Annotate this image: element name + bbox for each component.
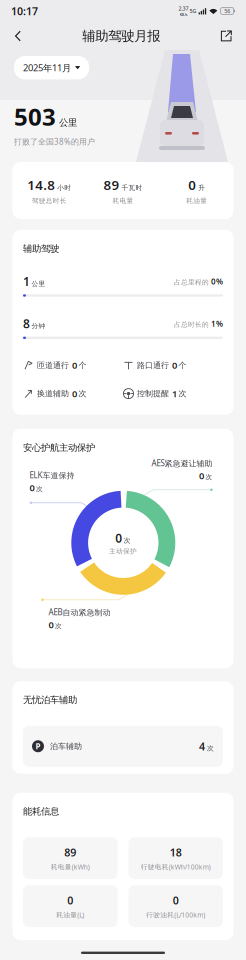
staticText: 公里 (59, 117, 77, 128)
staticText: P (35, 741, 40, 751)
staticText: 1% (211, 318, 223, 329)
staticText: 14.8 (27, 176, 55, 194)
staticText: KB/s (180, 12, 188, 17)
staticText: AES紧急避让辅助 (151, 458, 212, 468)
staticText: 0 (48, 618, 53, 631)
staticText: 行驶油耗(L/100km) (146, 910, 205, 919)
staticText: 0 (72, 387, 77, 400)
staticText: 行驶电耗(kWh/100km) (141, 862, 211, 871)
staticText: 0 (172, 359, 177, 371)
staticText: 泊车辅助 (50, 741, 82, 751)
staticText: 占总时长的 (174, 320, 209, 329)
staticText: 503 (14, 100, 56, 132)
staticText: ELK车道保持 (29, 470, 74, 480)
staticText: 驾驶总时长 (32, 197, 67, 205)
staticText: 匝道通行 (37, 360, 69, 370)
staticText: 0 (115, 530, 122, 546)
staticText: 0 (199, 469, 204, 482)
staticText: 升 (198, 184, 205, 192)
staticText: 占总里程的 (174, 278, 209, 286)
staticText: AEB自动紧急制动 (48, 607, 110, 617)
staticText: 分钟 (31, 322, 45, 330)
button[interactable]: P (23, 726, 223, 767)
staticText: 18 (170, 845, 182, 859)
staticText: 耗油量(L) (56, 910, 84, 919)
staticText: 0 (173, 893, 179, 907)
staticText: 辅助驾驶月报 (82, 28, 160, 44)
staticText: 次 (55, 622, 62, 630)
staticText: 个 (178, 360, 186, 370)
staticText: 次 (78, 389, 86, 398)
staticText: 2025年11月 (23, 61, 71, 74)
staticText: 耗电量(kWh) (51, 862, 90, 871)
staticText: 0 (29, 481, 34, 494)
staticText: 89 (103, 176, 119, 194)
staticText: 千瓦时 (121, 184, 142, 192)
staticText: 无忧泊车辅助 (23, 694, 77, 706)
button[interactable]: Share (213, 22, 239, 50)
staticText: 8 (23, 316, 30, 332)
staticText: 0 (72, 359, 77, 371)
staticText: 控制提醒 (137, 389, 169, 398)
staticText: 小时 (57, 184, 71, 192)
staticText: 次 (178, 389, 186, 398)
staticText: 0 (188, 176, 196, 194)
staticText: 次 (124, 536, 131, 545)
staticText: 打败了全国38%的用户 (14, 136, 95, 147)
staticText: 0 (67, 893, 73, 907)
staticText: 56 (224, 7, 230, 15)
staticText: 个 (78, 360, 86, 370)
staticText: 5G (190, 7, 197, 15)
staticText: 1 (172, 387, 177, 400)
staticText: 次 (36, 485, 43, 493)
staticText: 辅助驾驶 (23, 243, 59, 254)
button[interactable]: 2025年11月 (14, 56, 89, 79)
staticText: 89 (64, 845, 76, 859)
staticText: 主动保护 (109, 547, 137, 555)
staticText: 2.37 (179, 5, 189, 12)
staticText: 能耗信息 (23, 806, 59, 817)
staticText: 10:17 (11, 4, 38, 18)
staticText: 次 (207, 744, 214, 752)
staticText: 耗电量 (112, 197, 133, 205)
staticText: 安心护航主动保护 (23, 442, 95, 453)
staticText: 耗油量 (186, 197, 207, 205)
staticText: 换道辅助 (37, 389, 69, 398)
button[interactable]: Back (7, 22, 29, 50)
staticText: 路口通行 (137, 360, 169, 370)
staticText: 公里 (31, 280, 45, 288)
staticText: 0% (211, 276, 223, 287)
staticText: 1 (23, 273, 30, 289)
staticText: 次 (205, 473, 212, 481)
staticText: 4 (199, 739, 205, 753)
